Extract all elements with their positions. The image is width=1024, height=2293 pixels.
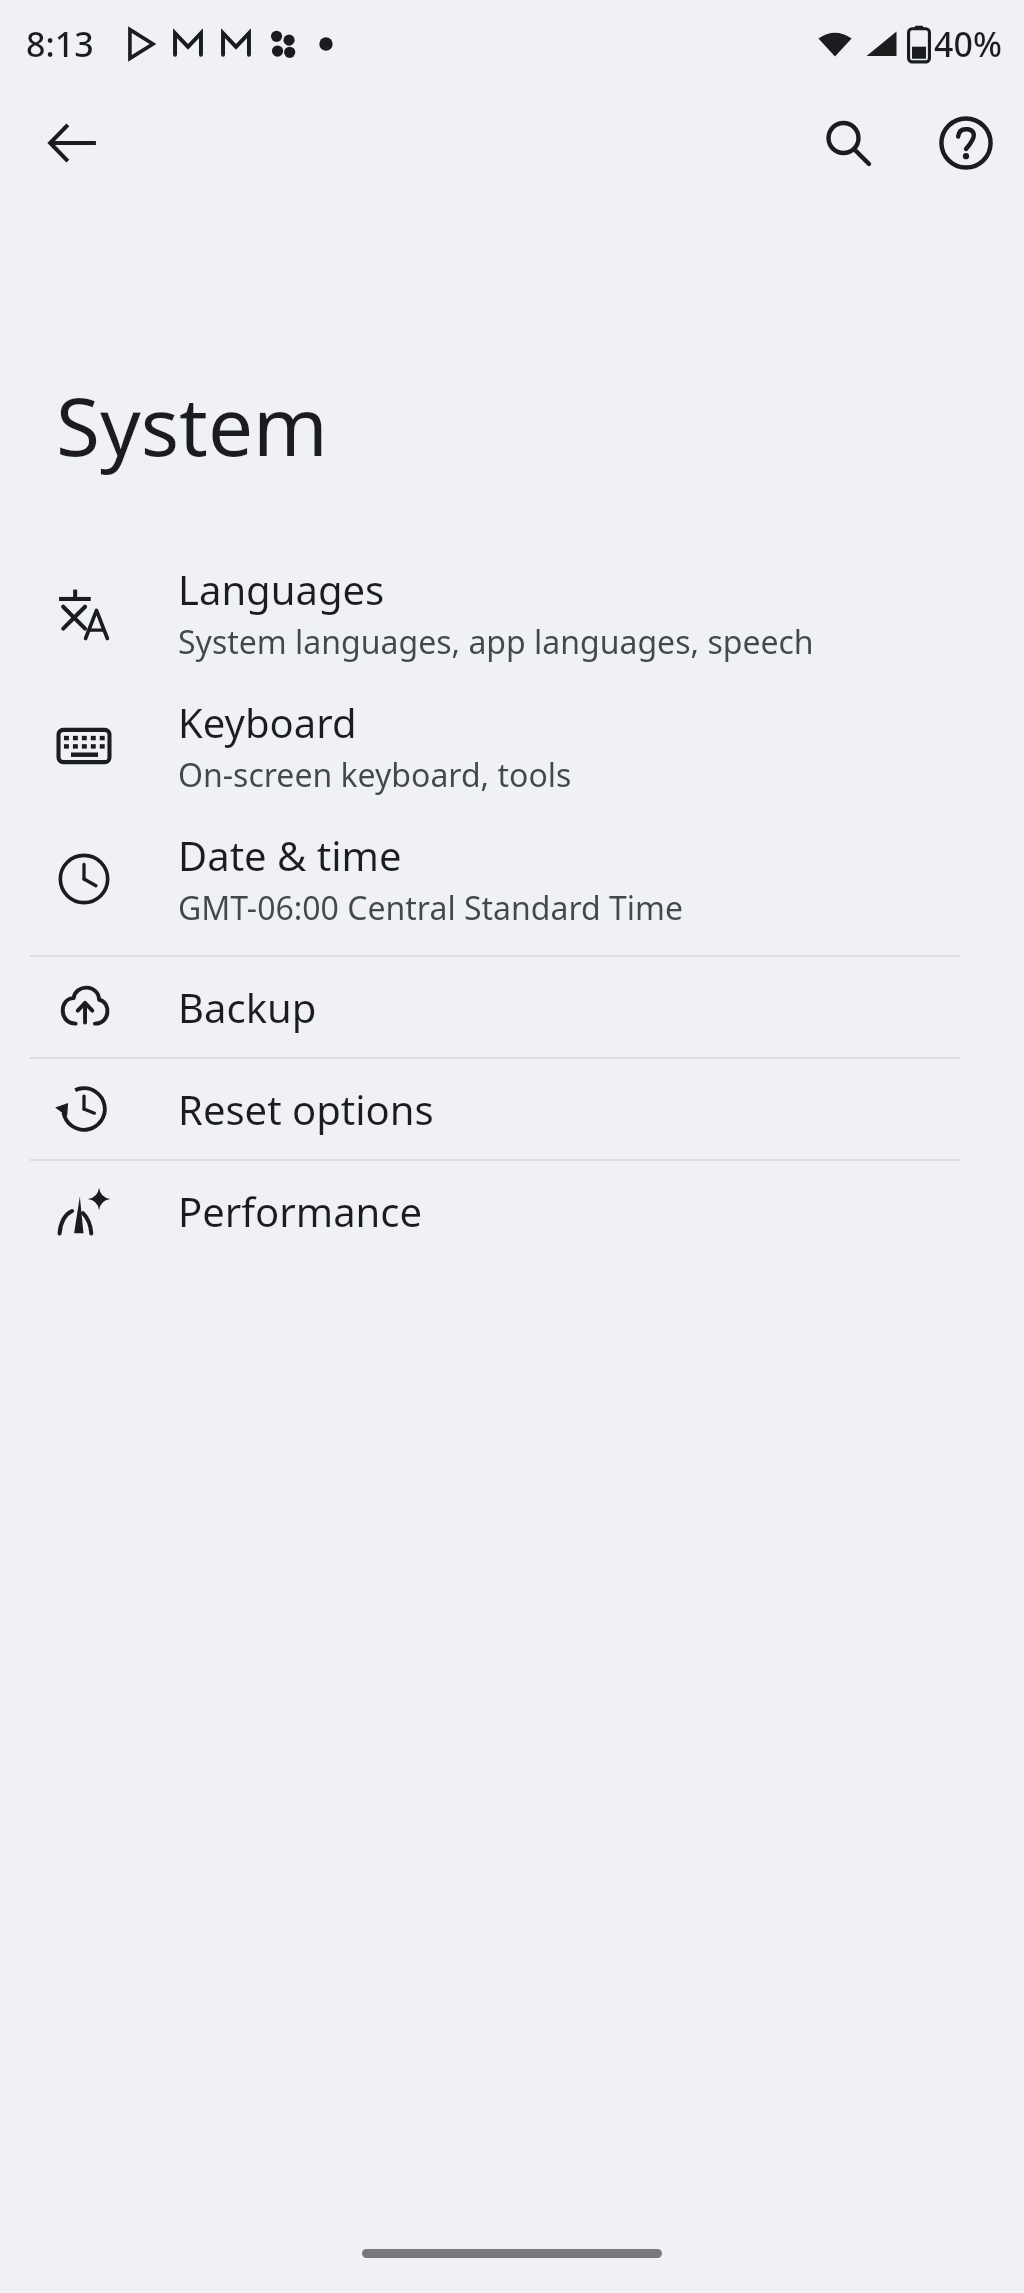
staticText: Languages	[178, 562, 385, 616]
button[interactable]: Languages	[0, 547, 1024, 679]
staticText: Keyboard	[178, 695, 357, 749]
staticText: Reset options	[178, 1082, 434, 1136]
staticText: 40%	[934, 21, 1002, 67]
staticText: GMT-06:00 Central Standard Time	[178, 886, 684, 930]
staticText: 8:13	[26, 21, 94, 67]
button[interactable]: Back	[24, 95, 120, 191]
staticText: Performance	[178, 1184, 423, 1238]
staticText: System languages, app languages, speech	[178, 620, 814, 664]
staticText: System	[56, 370, 328, 479]
button[interactable]: Keyboard	[0, 679, 1024, 812]
staticText: Backup	[178, 980, 317, 1034]
button[interactable]: Reset options	[0, 1059, 1024, 1159]
button[interactable]: Search	[800, 95, 896, 191]
staticText: Date & time	[178, 828, 402, 882]
button[interactable]: Performance	[0, 1161, 1024, 1261]
button[interactable]: Help	[918, 95, 1014, 191]
button[interactable]: Backup	[0, 957, 1024, 1057]
button[interactable]: Date & time	[0, 812, 1024, 945]
staticText: On-screen keyboard, tools	[178, 753, 572, 797]
